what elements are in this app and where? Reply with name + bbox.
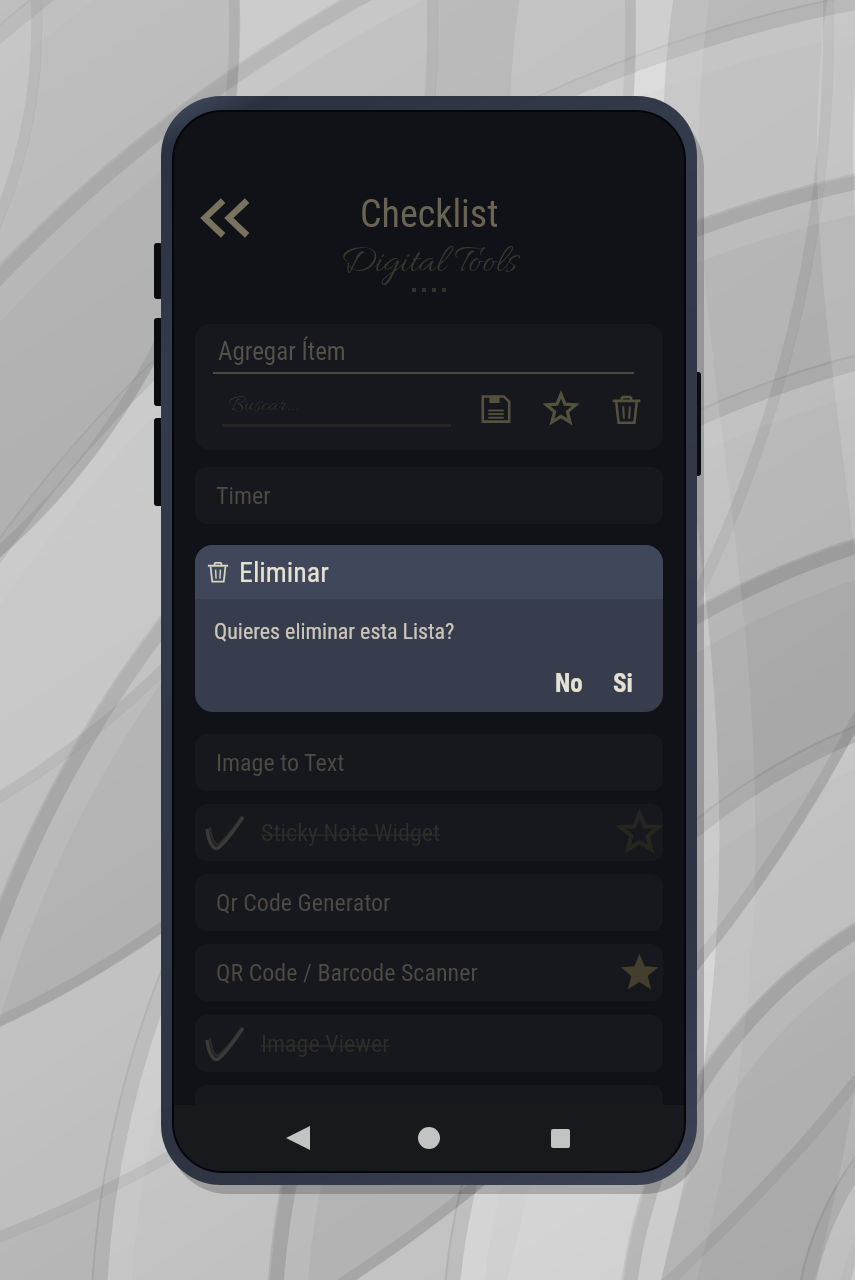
button[interactable]: Delete [604, 387, 648, 431]
button[interactable]: Image to Text [195, 734, 663, 791]
staticText: No [555, 669, 583, 698]
staticText: Timer [216, 482, 271, 510]
button[interactable]: Recents [535, 1113, 585, 1163]
button[interactable]: Back [197, 189, 255, 247]
button[interactable]: Favorite [539, 387, 583, 431]
button[interactable]: Si [604, 666, 642, 701]
button[interactable]: Home [404, 1113, 454, 1163]
button[interactable]: QR Code / Barcode Scanner [195, 944, 663, 1001]
staticText: Image to Text [216, 749, 345, 777]
staticText: Digital Tools [340, 238, 518, 288]
button[interactable]: Image Viewer [195, 1015, 663, 1072]
staticText: Buscar... [229, 392, 299, 421]
staticText: Si [613, 669, 633, 698]
button[interactable]: Save [474, 387, 518, 431]
staticText: Qr Code Generator [216, 889, 391, 917]
button[interactable]: Sticky Note Widget [195, 804, 663, 861]
button[interactable]: No [546, 666, 592, 701]
button[interactable]: Back [273, 1113, 323, 1163]
staticText: Agregar Ítem [218, 337, 346, 366]
button[interactable]: Qr Code Generator [195, 874, 663, 931]
staticText: Sticky Note Widget [261, 819, 441, 847]
staticText: Eliminar [239, 556, 329, 589]
staticText: QR Code / Barcode Scanner [216, 959, 478, 987]
staticText: Checklist [360, 192, 499, 237]
staticText: Quieres eliminar esta Lista? [214, 619, 455, 645]
button[interactable]: Timer [195, 467, 663, 524]
staticText: Image Viewer [261, 1030, 390, 1058]
